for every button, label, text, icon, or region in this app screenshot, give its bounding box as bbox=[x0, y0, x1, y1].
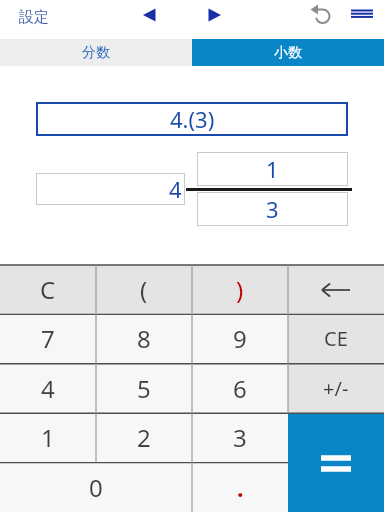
button[interactable]: 4 bbox=[0, 364, 96, 413]
button[interactable]: . bbox=[192, 463, 288, 512]
staticText: 0 bbox=[89, 471, 103, 504]
button[interactable]: 8 bbox=[96, 314, 192, 363]
staticText: 分数 bbox=[82, 44, 110, 62]
staticText: 4.(3) bbox=[170, 104, 215, 134]
staticText: 小数 bbox=[274, 44, 302, 62]
staticText: 3 bbox=[266, 194, 279, 224]
button[interactable]: 1 bbox=[0, 413, 96, 462]
button[interactable]: ( bbox=[96, 265, 192, 314]
staticText: 2 bbox=[137, 421, 151, 454]
button[interactable]: 7 bbox=[0, 314, 96, 363]
button[interactable]: 小数 bbox=[192, 39, 384, 66]
staticText: 7 bbox=[41, 322, 55, 355]
staticText: 4 bbox=[41, 372, 55, 405]
staticText: 3 bbox=[233, 421, 247, 454]
button[interactable]: 9 bbox=[192, 314, 288, 363]
staticText: 5 bbox=[137, 372, 151, 405]
button[interactable] bbox=[132, 0, 166, 30]
staticText: CE bbox=[324, 325, 348, 352]
staticText: 9 bbox=[233, 322, 247, 355]
button[interactable]: 0 bbox=[0, 463, 192, 512]
button[interactable]: 分数 bbox=[0, 39, 192, 66]
button[interactable]: CE bbox=[288, 314, 384, 363]
button[interactable] bbox=[288, 265, 384, 314]
staticText: 4 bbox=[169, 174, 182, 204]
staticText: C bbox=[40, 273, 56, 306]
button[interactable]: 6 bbox=[192, 364, 288, 413]
button[interactable]: ) bbox=[192, 265, 288, 314]
button[interactable]: 5 bbox=[96, 364, 192, 413]
staticText: 6 bbox=[233, 372, 247, 405]
staticText: +/- bbox=[323, 375, 349, 402]
staticText: 1 bbox=[41, 421, 55, 454]
button[interactable] bbox=[288, 413, 384, 512]
button[interactable] bbox=[345, 0, 379, 30]
button[interactable]: 3 bbox=[192, 413, 288, 462]
staticText: ( bbox=[140, 273, 148, 306]
button[interactable]: 2 bbox=[96, 413, 192, 462]
button[interactable]: C bbox=[0, 265, 96, 314]
staticText: 1 bbox=[266, 154, 279, 184]
staticText: ) bbox=[236, 273, 244, 306]
button[interactable] bbox=[198, 0, 232, 30]
staticText: 8 bbox=[137, 322, 151, 355]
staticText: . bbox=[237, 472, 244, 503]
button[interactable]: +/- bbox=[288, 364, 384, 413]
button[interactable]: 設定 bbox=[4, 4, 64, 30]
button[interactable] bbox=[306, 0, 336, 30]
staticText: 設定 bbox=[19, 8, 49, 27]
